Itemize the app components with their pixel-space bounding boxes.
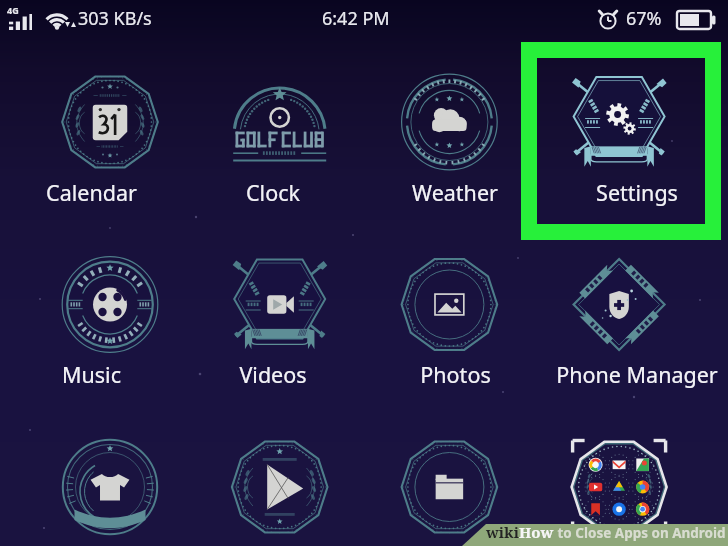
button[interactable]: App icon: [546, 406, 728, 546]
button[interactable]: Weather: [364, 42, 546, 224]
button[interactable]: Calendar: [0, 42, 182, 224]
staticText: Photos: [420, 360, 491, 389]
staticText: Clock: [246, 178, 300, 207]
staticText: Music: [62, 360, 121, 389]
button[interactable]: Photos: [364, 224, 546, 406]
button[interactable]: Settings: [546, 42, 728, 224]
staticText: 67%: [626, 6, 662, 31]
staticText: How: [519, 522, 554, 542]
button[interactable]: App icon: [0, 406, 182, 546]
staticText: Phone Manager: [556, 360, 718, 389]
staticText: Videos: [239, 360, 307, 389]
staticText: wiki: [486, 522, 519, 542]
staticText: Calendar: [46, 178, 137, 207]
staticText: 303 KB/s: [78, 6, 152, 31]
button[interactable]: Phone Manager: [546, 224, 728, 406]
button[interactable]: Music: [0, 224, 182, 406]
staticText: 6:42 PM: [322, 6, 390, 31]
button[interactable]: Videos: [182, 224, 364, 406]
staticText: Weather: [412, 178, 498, 207]
button[interactable]: App icon: [364, 406, 546, 546]
staticText: Settings: [596, 178, 678, 207]
staticText: to Close Apps on Android: [554, 524, 726, 542]
staticText: 4G: [7, 4, 19, 16]
button[interactable]: Clock: [182, 42, 364, 224]
button[interactable]: App icon: [182, 406, 364, 546]
